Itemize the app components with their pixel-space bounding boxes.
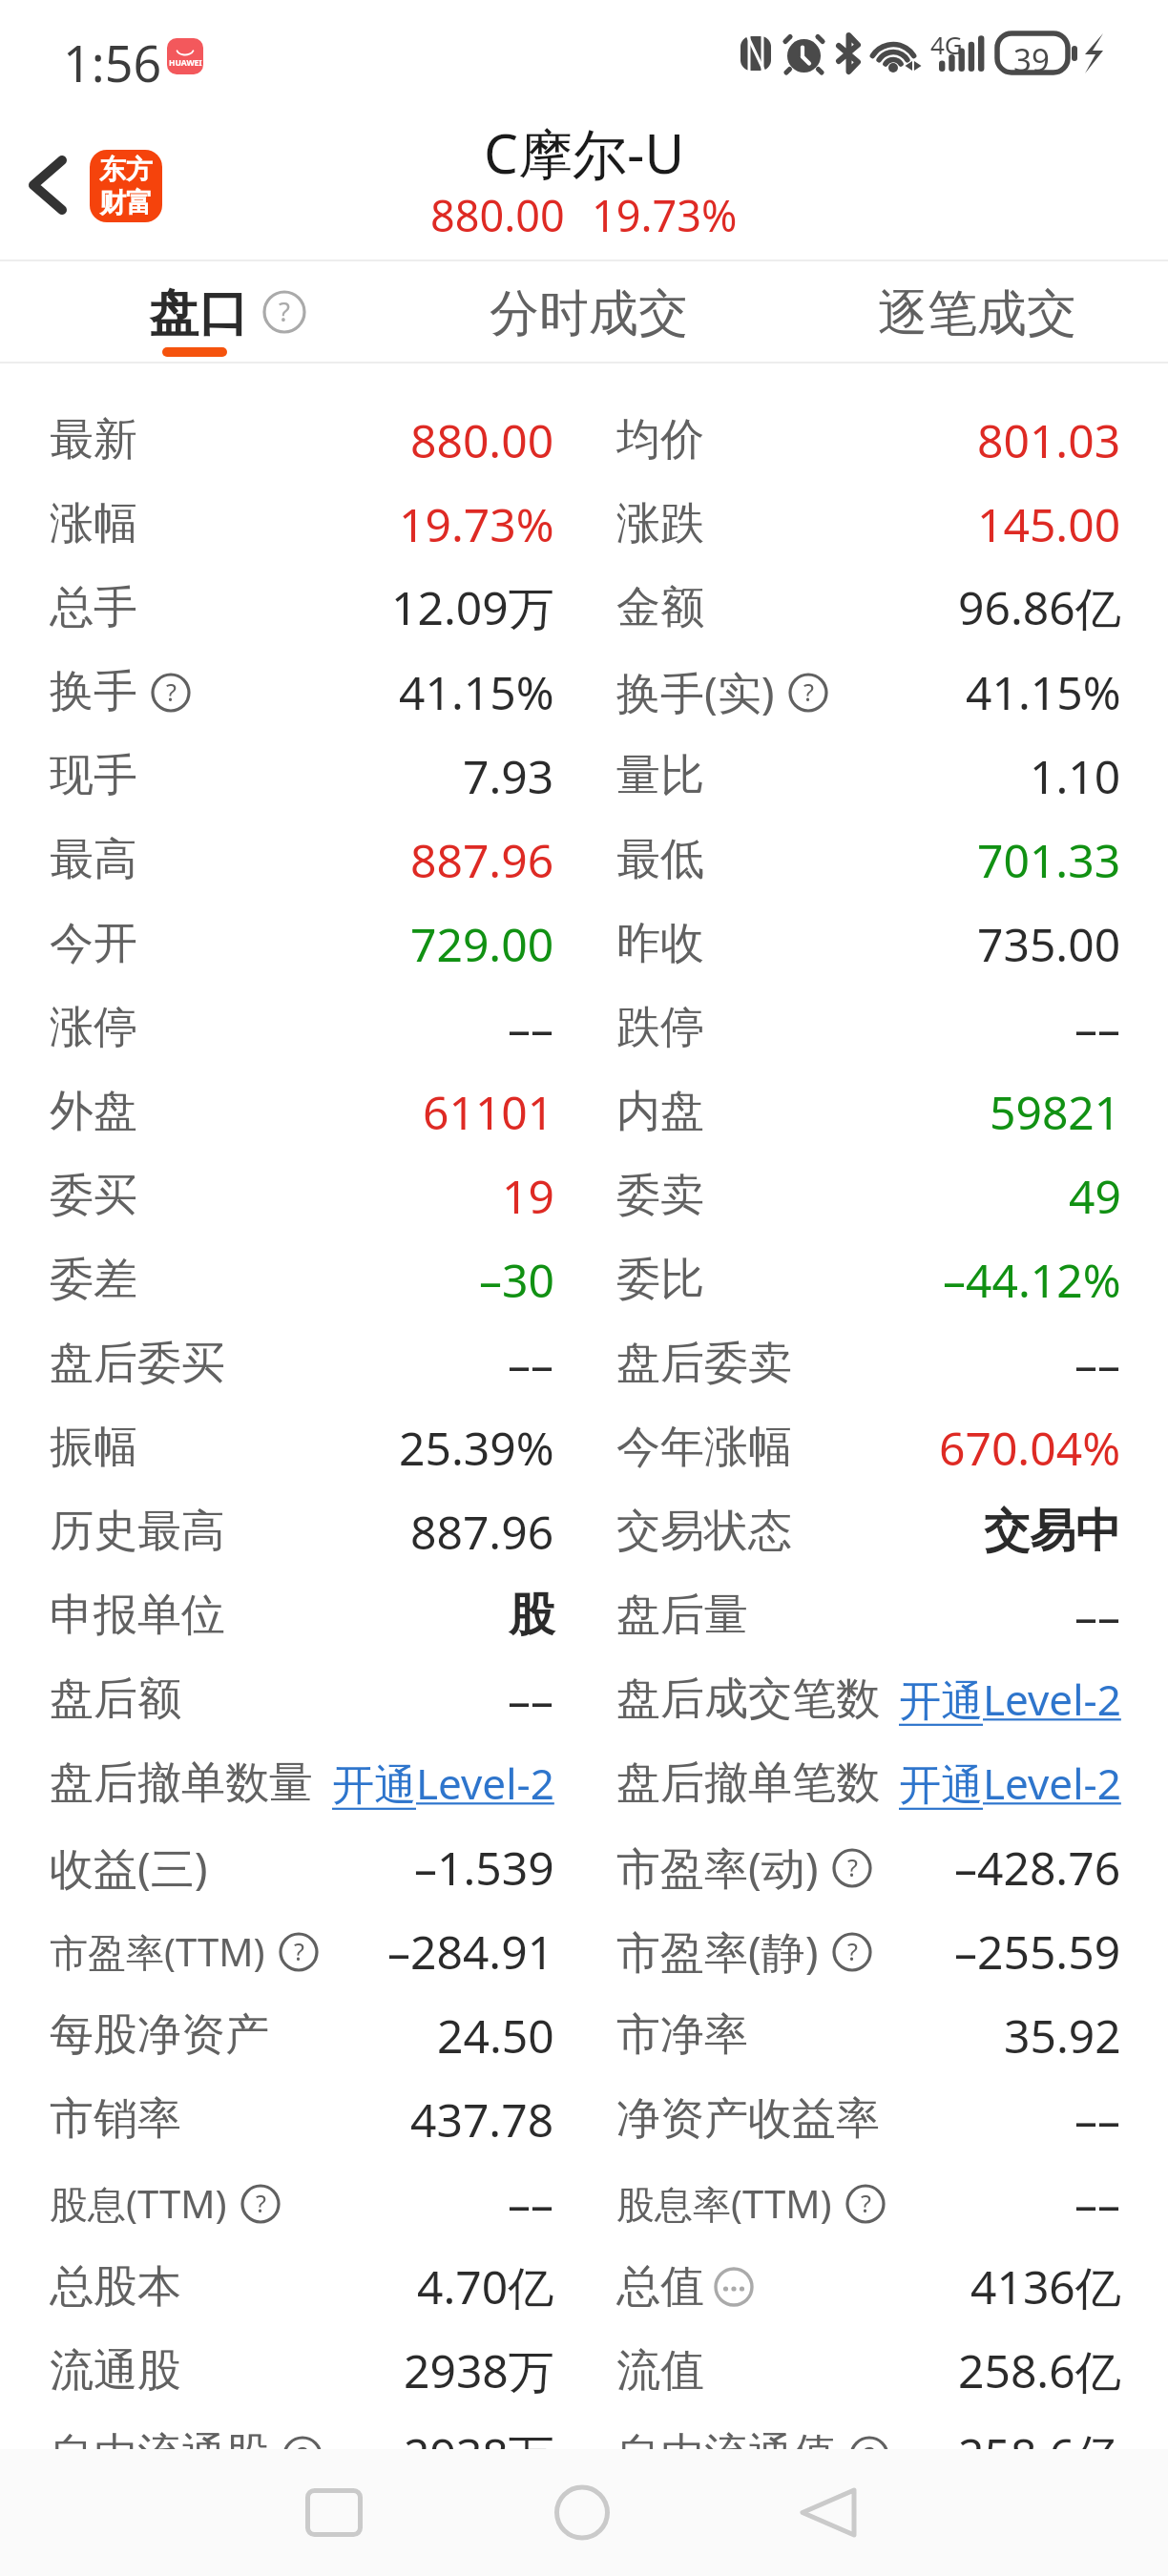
staticText: 887.96 — [410, 1501, 554, 1563]
button[interactable]: 市销率 — [0, 2077, 584, 2161]
staticText: 逐笔成交 — [878, 282, 1076, 345]
staticText: 振幅 — [50, 1420, 137, 1475]
button[interactable]: 量比 — [584, 734, 1168, 818]
button[interactable]: Help — [151, 673, 191, 713]
button[interactable]: 市盈率(TTM) — [0, 1909, 584, 1993]
button[interactable]: 外盘 — [0, 1070, 584, 1153]
button[interactable]: Recents — [248, 2449, 420, 2576]
button[interactable]: Help — [240, 2184, 281, 2224]
button[interactable]: 交易状态 — [584, 1489, 1168, 1573]
staticText: ? — [294, 1935, 304, 1967]
button[interactable]: 净资产收益率 — [584, 2077, 1168, 2161]
button[interactable]: 金额 — [584, 566, 1168, 650]
button[interactable]: 委卖 — [584, 1153, 1168, 1237]
button[interactable]: 收益(三) — [0, 1825, 584, 1909]
staticText: 盘后撤单数量 — [50, 1755, 313, 1811]
button[interactable]: 内盘 — [584, 1070, 1168, 1153]
button[interactable]: 逐笔成交 — [851, 261, 1103, 364]
button[interactable]: 盘口 — [124, 261, 331, 364]
button[interactable]: More info — [714, 2267, 754, 2307]
staticText: 每股净资产 — [50, 2007, 269, 2063]
staticText: –– — [1074, 1333, 1121, 1395]
staticText: 市盈率(静) — [616, 1922, 819, 1982]
button[interactable]: 今开 — [0, 902, 584, 986]
button[interactable]: Help — [849, 2436, 889, 2476]
button[interactable]: 自由流通值 — [584, 2413, 1168, 2497]
button[interactable]: 最低 — [584, 818, 1168, 902]
button[interactable]: 总值 — [584, 2245, 1168, 2329]
button[interactable]: 市盈率(动) — [584, 1825, 1168, 1909]
button[interactable]: 每股净资产 — [0, 1993, 584, 2077]
staticText: 41.15% — [966, 661, 1121, 723]
button[interactable]: 流通股 — [0, 2329, 584, 2413]
button[interactable]: 涨幅 — [0, 482, 584, 566]
staticText: 外盘 — [50, 1084, 137, 1139]
button[interactable]: 现手 — [0, 734, 584, 818]
button[interactable]: Help — [832, 1848, 872, 1888]
staticText: 交易状态 — [616, 1504, 792, 1559]
staticText: 49 — [1069, 1165, 1121, 1227]
button[interactable]: 市盈率(静) — [584, 1909, 1168, 1993]
button[interactable]: 股息率(TTM) — [584, 2161, 1168, 2245]
button[interactable]: 盘后撤单笔数 — [584, 1741, 1168, 1825]
staticText: 2938万 — [404, 2339, 554, 2402]
staticText: 701.33 — [977, 829, 1121, 891]
button[interactable]: 市净率 — [584, 1993, 1168, 2077]
button[interactable]: 换手(实) — [584, 650, 1168, 734]
button[interactable]: 申报单位 — [0, 1573, 584, 1657]
button[interactable]: 委比 — [584, 1237, 1168, 1321]
button[interactable]: 盘后量 — [584, 1573, 1168, 1657]
staticText: 开通Level-2 — [899, 1755, 1121, 1812]
button[interactable]: 委差 — [0, 1237, 584, 1321]
button[interactable]: 盘后撤单数量 — [0, 1741, 584, 1825]
button[interactable]: 今年涨幅 — [584, 1405, 1168, 1489]
button[interactable]: 昨收 — [584, 902, 1168, 986]
button[interactable]: 盘后委卖 — [584, 1321, 1168, 1405]
staticText: 145.00 — [977, 493, 1121, 555]
button[interactable]: Help — [282, 2436, 323, 2476]
button[interactable]: Help — [788, 673, 828, 713]
staticText: 流通股 — [50, 2343, 181, 2399]
button[interactable]: 总手 — [0, 566, 584, 650]
button[interactable]: 最高 — [0, 818, 584, 902]
staticText: 委比 — [616, 1252, 704, 1307]
button[interactable]: 均价 — [584, 398, 1168, 482]
button[interactable]: 涨跌 — [584, 482, 1168, 566]
button[interactable]: Back — [6, 143, 88, 225]
staticText: –428.76 — [954, 1837, 1121, 1899]
staticText: 换手 — [50, 664, 137, 719]
button[interactable]: 历史最高 — [0, 1489, 584, 1573]
button[interactable]: 盘后成交笔数 — [584, 1657, 1168, 1741]
staticText: 今年涨幅 — [616, 1420, 792, 1475]
button[interactable]: Help — [279, 1932, 319, 1972]
button[interactable]: 盘后委买 — [0, 1321, 584, 1405]
staticText: 25.39% — [399, 1417, 554, 1479]
staticText: 19.73% — [399, 493, 554, 555]
button[interactable]: 振幅 — [0, 1405, 584, 1489]
button[interactable]: 分时成交 — [463, 261, 715, 364]
staticText: 金额 — [616, 580, 704, 635]
staticText: –– — [508, 997, 554, 1059]
button[interactable]: 换手 — [0, 650, 584, 734]
button[interactable]: 流值 — [584, 2329, 1168, 2413]
button[interactable]: Help — [262, 290, 306, 334]
button[interactable]: 最新 — [0, 398, 584, 482]
button[interactable]: 盘后额 — [0, 1657, 584, 1741]
button[interactable]: 涨停 — [0, 986, 584, 1070]
button[interactable]: Back — [742, 2449, 914, 2576]
button[interactable]: 股息(TTM) — [0, 2161, 584, 2245]
staticText: 开通Level-2 — [332, 1755, 554, 1812]
button[interactable]: Help — [845, 2184, 886, 2224]
staticText: 4.70亿 — [417, 2255, 554, 2318]
button[interactable]: 跌停 — [584, 986, 1168, 1070]
button[interactable]: 总股本 — [0, 2245, 584, 2329]
staticText: 今开 — [50, 916, 137, 971]
staticText: 729.00 — [410, 913, 554, 975]
button[interactable]: 委买 — [0, 1153, 584, 1237]
button[interactable]: Help — [832, 1932, 872, 1972]
button[interactable]: Home — [496, 2449, 668, 2576]
staticText: 净资产收益率 — [616, 2091, 880, 2147]
button[interactable]: East Money — [90, 150, 162, 222]
button[interactable]: 自由流通股 — [0, 2413, 584, 2497]
staticText: 19 — [502, 1165, 554, 1227]
